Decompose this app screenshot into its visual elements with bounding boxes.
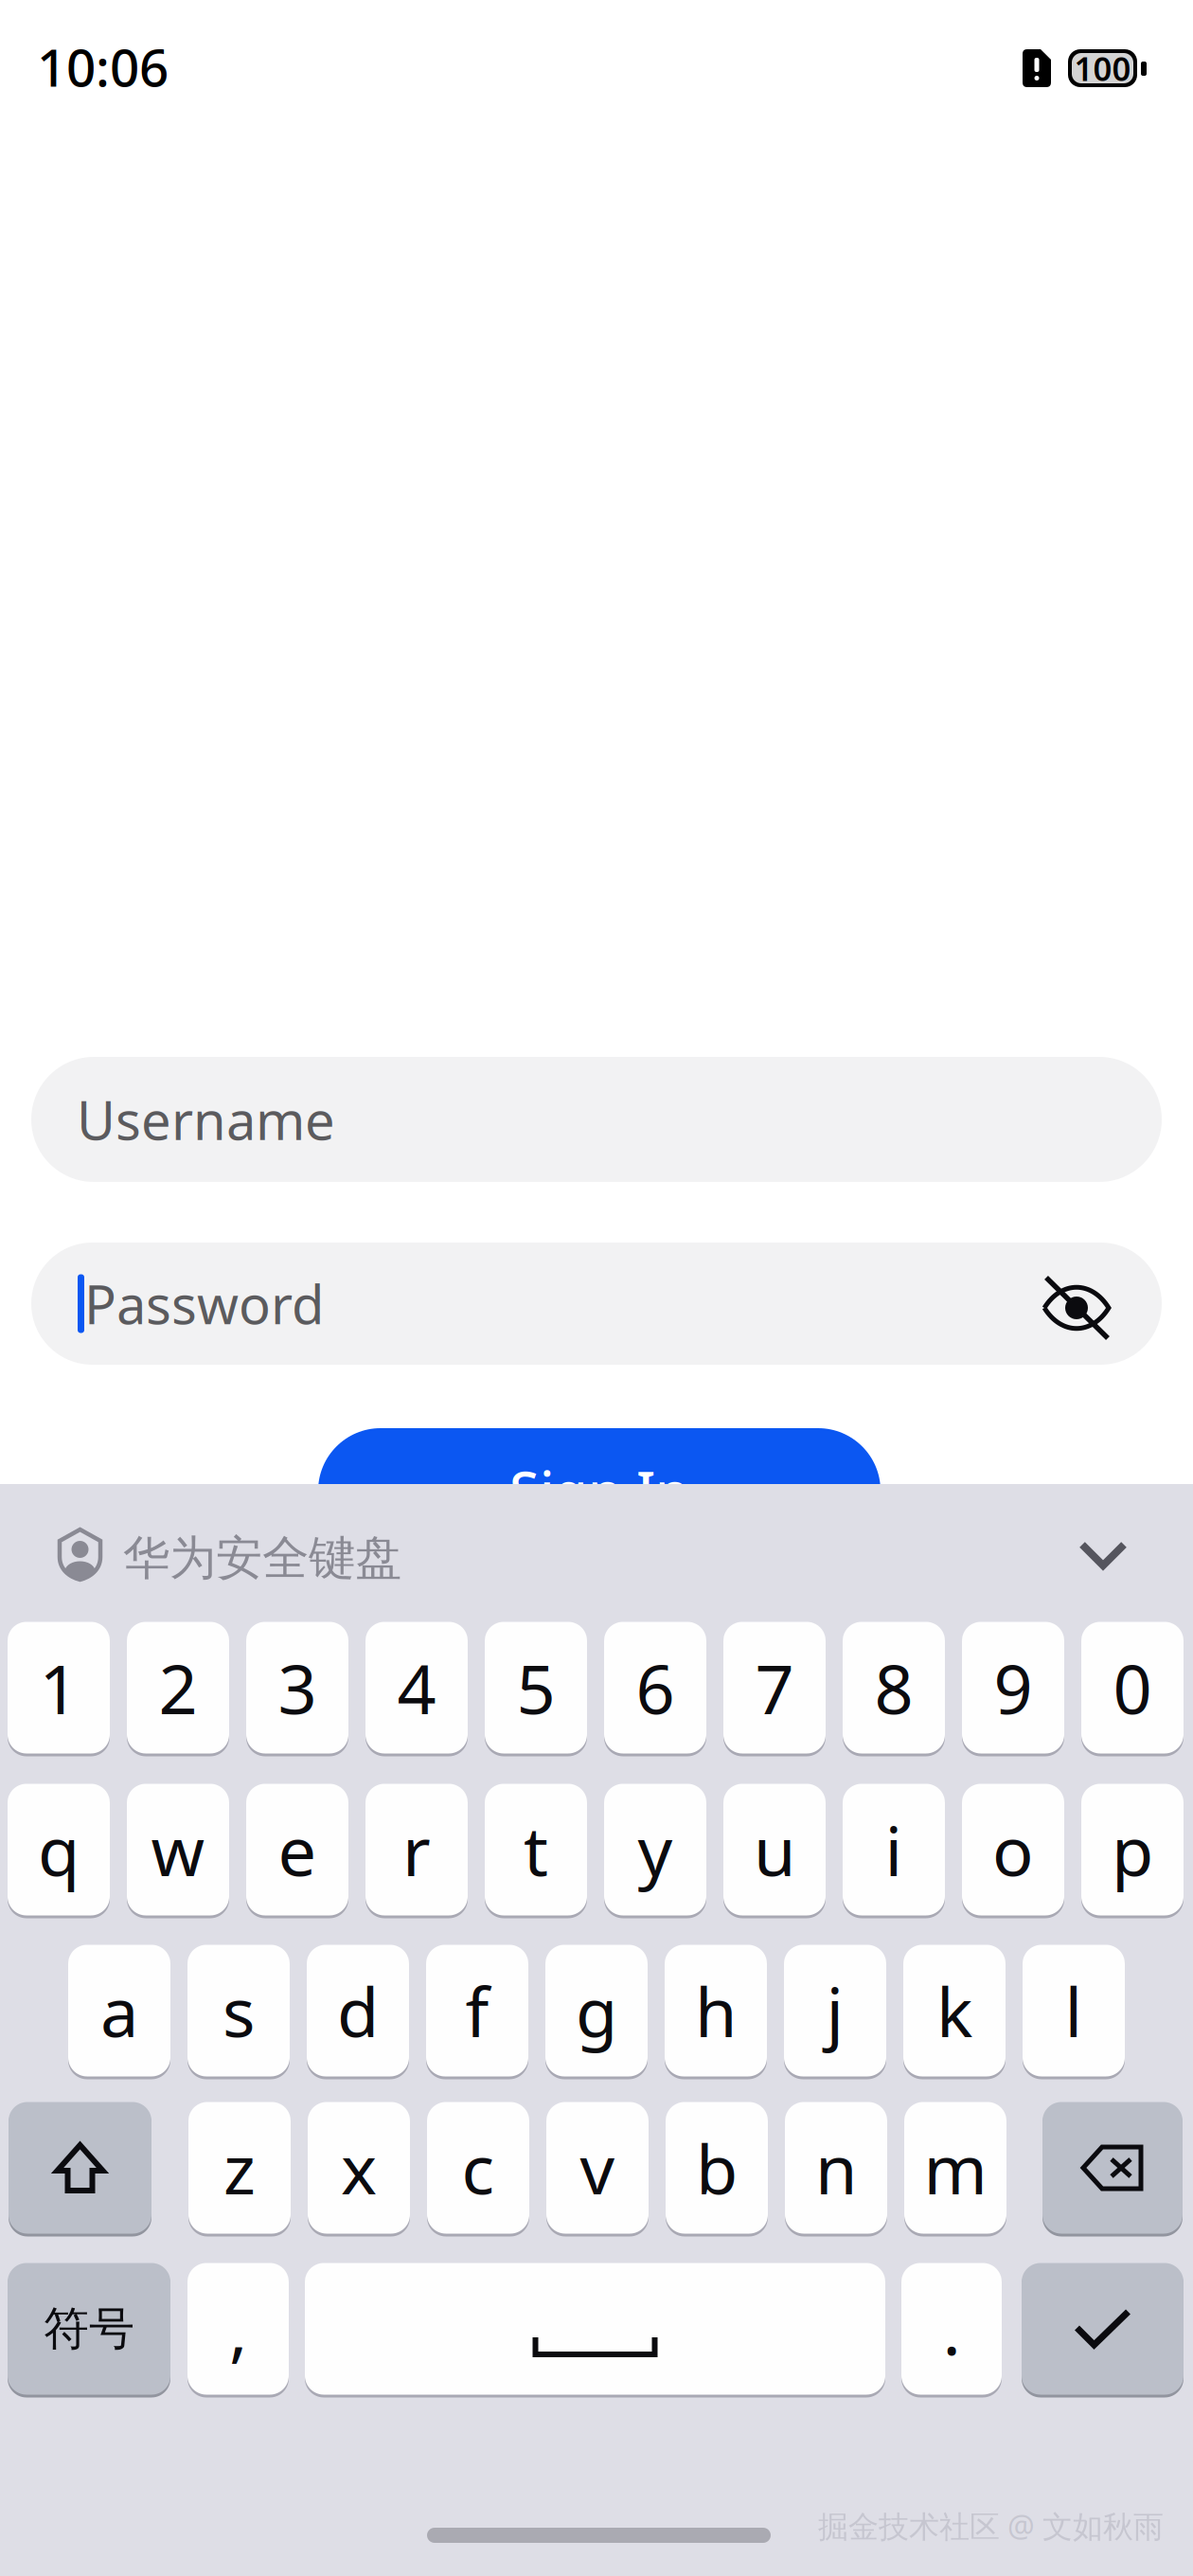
staticText: 100 (1074, 46, 1131, 90)
button[interactable]: p (1081, 1782, 1184, 1917)
staticText: o (992, 1804, 1034, 1895)
button[interactable]: Sign In (318, 1428, 881, 1553)
staticText: 9 (994, 1642, 1033, 1733)
staticText: 4 (397, 1642, 436, 1733)
staticText: a (100, 1965, 138, 2056)
button[interactable]: n (785, 2101, 887, 2235)
button[interactable]: Space (305, 2262, 885, 2396)
staticText: 8 (874, 1642, 913, 1733)
staticText: b (696, 2123, 738, 2213)
button[interactable]: x (308, 2101, 410, 2235)
button[interactable]: 1 (8, 1620, 110, 1755)
staticText: m (924, 2123, 987, 2213)
button[interactable]: , (187, 2262, 289, 2396)
staticText: d (337, 1965, 379, 2056)
button[interactable]: v (546, 2101, 649, 2235)
button[interactable]: t (485, 1782, 587, 1917)
button[interactable]: h (665, 1943, 767, 2078)
staticText: 符号 (44, 2301, 134, 2357)
button[interactable]: e (246, 1782, 348, 1917)
staticText: Password (84, 1268, 324, 1339)
button[interactable]: s (187, 1943, 290, 2078)
staticText: 7 (755, 1642, 794, 1733)
button[interactable]: k (903, 1943, 1006, 2078)
button[interactable]: 0 (1081, 1620, 1184, 1755)
button[interactable]: q (8, 1782, 110, 1917)
button[interactable]: 7 (723, 1620, 826, 1755)
button[interactable]: r (365, 1782, 468, 1917)
button[interactable]: Username (31, 1057, 1162, 1182)
button[interactable]: c (427, 2101, 529, 2235)
button[interactable]: u (723, 1782, 826, 1917)
staticText: 10:06 (37, 32, 169, 101)
staticText: 6 (636, 1642, 675, 1733)
staticText: 5 (516, 1642, 555, 1733)
button[interactable]: Shift (9, 2101, 151, 2235)
button[interactable]: m (904, 2101, 1006, 2235)
staticText: 0 (1113, 1642, 1152, 1733)
staticText: r (402, 1804, 431, 1895)
staticText: 2 (159, 1642, 197, 1733)
staticText: u (754, 1804, 795, 1895)
staticText: z (223, 2123, 256, 2213)
button[interactable]: i (843, 1782, 945, 1917)
button[interactable]: 9 (962, 1620, 1064, 1755)
staticText: x (341, 2123, 377, 2213)
staticText: e (278, 1804, 317, 1895)
button[interactable]: Delete (1042, 2101, 1183, 2235)
button[interactable]: 8 (843, 1620, 945, 1755)
staticText: n (815, 2123, 857, 2213)
button[interactable]: 2 (127, 1620, 229, 1755)
staticText: c (462, 2123, 495, 2213)
button[interactable]: Password (31, 1243, 1162, 1365)
button[interactable]: f (426, 1943, 528, 2078)
button[interactable]: Hide keyboard (1078, 1541, 1128, 1569)
staticText: l (1065, 1965, 1083, 2056)
button[interactable]: 6 (604, 1620, 706, 1755)
button[interactable]: a (68, 1943, 170, 2078)
button[interactable]: y (604, 1782, 706, 1917)
button[interactable]: 符号 (8, 2262, 170, 2396)
staticText: Sign In (509, 1455, 689, 1527)
button[interactable]: o (962, 1782, 1064, 1917)
staticText: j (826, 1965, 844, 2056)
staticText: w (151, 1804, 205, 1895)
button[interactable]: 3 (246, 1620, 348, 1755)
button[interactable]: j (784, 1943, 886, 2078)
staticText: . (943, 2284, 961, 2374)
staticText: , (229, 2284, 247, 2374)
button[interactable]: Show password (1041, 1270, 1113, 1346)
staticText: i (885, 1804, 903, 1895)
staticText: k (936, 1965, 972, 2056)
staticText: p (1112, 1804, 1153, 1895)
staticText: s (223, 1965, 255, 2056)
staticText: v (580, 2123, 615, 2213)
staticText: 3 (278, 1642, 317, 1733)
button[interactable]: d (307, 1943, 409, 2078)
staticText: h (695, 1965, 737, 2056)
button[interactable]: z (188, 2101, 291, 2235)
button[interactable]: 5 (485, 1620, 587, 1755)
staticText: g (576, 1965, 617, 2056)
staticText: 华为安全键盘 (123, 1529, 401, 1587)
button[interactable]: g (545, 1943, 648, 2078)
staticText: Username (77, 1084, 335, 1155)
button[interactable]: w (127, 1782, 229, 1917)
button[interactable]: . (901, 2262, 1002, 2396)
staticText: q (38, 1804, 80, 1895)
button[interactable]: b (666, 2101, 768, 2235)
button[interactable]: l (1023, 1943, 1125, 2078)
button[interactable]: Enter (1022, 2262, 1184, 2396)
staticText: y (638, 1804, 673, 1895)
staticText: 掘金技术社区 @ 文如秋雨 (818, 2506, 1164, 2546)
staticText: f (465, 1965, 489, 2056)
staticText: 1 (39, 1642, 78, 1733)
button[interactable]: 4 (365, 1620, 468, 1755)
staticText: t (524, 1804, 548, 1895)
